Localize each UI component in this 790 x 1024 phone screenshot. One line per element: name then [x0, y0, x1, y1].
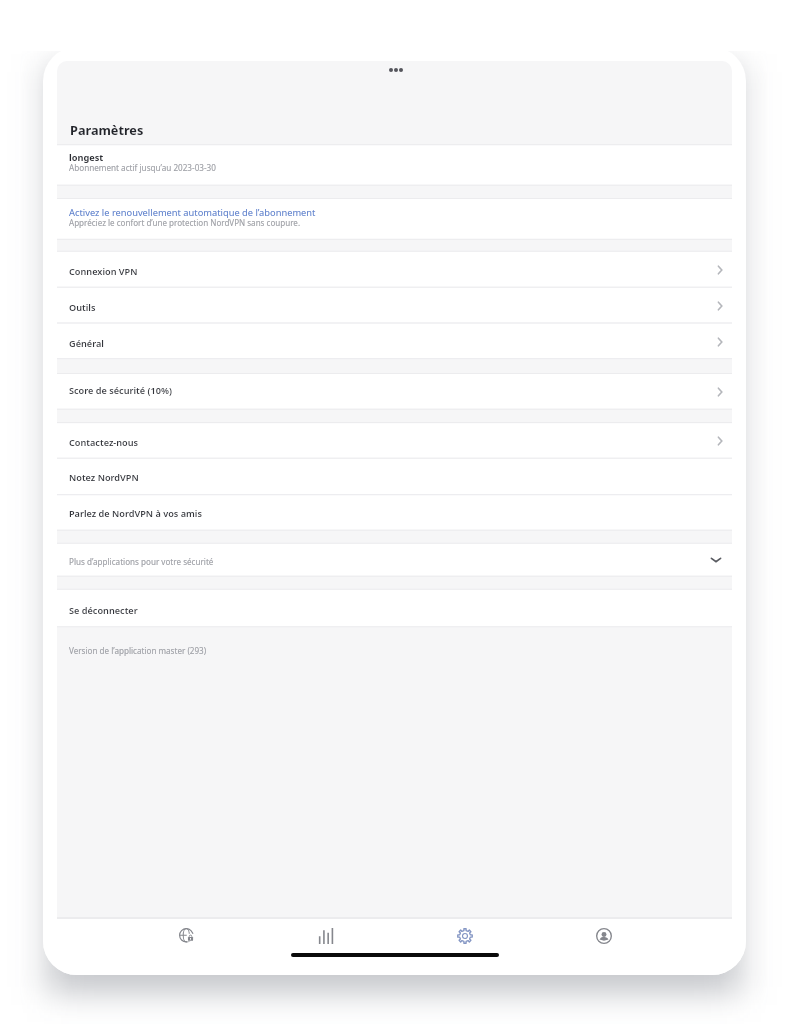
- staticText: Paramètres: [70, 121, 144, 138]
- button[interactable]: Settings: [395, 919, 534, 952]
- button[interactable]: Se déconnecter: [57, 590, 732, 627]
- button[interactable]: Parlez de NordVPN à vos amis: [57, 495, 732, 530]
- button[interactable]: longest: [57, 145, 732, 185]
- staticText: Outils: [69, 301, 96, 313]
- button[interactable]: Score de sécurité (10%): [57, 374, 732, 409]
- button[interactable]: Activez le renouvellement automatique de…: [57, 199, 732, 239]
- button[interactable]: Account: [534, 919, 673, 952]
- staticText: Score de sécurité (10%): [69, 384, 172, 396]
- staticText: Notez NordVPN: [69, 471, 139, 483]
- staticText: Abonnement actif jusqu’au 2023-03-30: [69, 162, 216, 173]
- button[interactable]: Statistics: [256, 919, 395, 952]
- button[interactable]: VPN connection: [117, 919, 256, 952]
- staticText: Appréciez le confort d’une protection No…: [69, 217, 301, 228]
- staticText: Plus d’applications pour votre sécurité: [69, 556, 214, 567]
- staticText: longest: [69, 151, 104, 164]
- staticText: Activez le renouvellement automatique de…: [69, 206, 316, 219]
- button[interactable]: Plus d’applications pour votre sécurité: [57, 544, 732, 576]
- button[interactable]: Outils: [57, 288, 732, 323]
- button[interactable]: Notez NordVPN: [57, 459, 732, 495]
- button[interactable]: Contactez-nous: [57, 423, 732, 458]
- staticText: Contactez-nous: [69, 436, 139, 448]
- staticText: Se déconnecter: [69, 604, 138, 616]
- staticText: Connexion VPN: [69, 265, 138, 277]
- staticText: Version de l’application master (293): [69, 645, 207, 656]
- button[interactable]: Général: [57, 324, 732, 359]
- staticText: Général: [69, 337, 104, 349]
- staticText: Parlez de NordVPN à vos amis: [69, 507, 202, 519]
- button[interactable]: Connexion VPN: [57, 252, 732, 287]
